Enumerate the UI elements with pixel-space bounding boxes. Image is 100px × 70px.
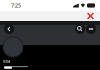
staticText: 7:25	[11, 2, 21, 9]
button[interactable]: Back	[4, 24, 14, 34]
button[interactable]: More	[86, 24, 96, 34]
button[interactable]: Search	[75, 24, 85, 34]
staticText: 0:04	[3, 58, 10, 64]
button[interactable]: Close	[86, 11, 95, 20]
